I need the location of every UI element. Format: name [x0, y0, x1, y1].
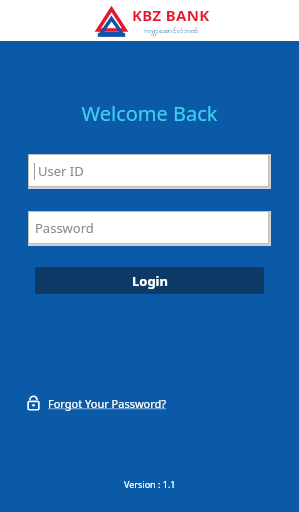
- button[interactable]: Forgot Your Password?: [26, 395, 299, 411]
- staticText: ကမ္ဘာ့အောင်လံဘဏ်: [144, 26, 199, 37]
- staticText: Login: [132, 272, 168, 290]
- staticText: User ID: [38, 162, 84, 180]
- staticText: Welcome Back: [81, 100, 218, 127]
- staticText: KBZ BANK: [132, 5, 210, 25]
- staticText: Version : 1.1: [124, 478, 176, 490]
- staticText: Forgot Your Password?: [48, 396, 167, 411]
- button[interactable]: Login: [35, 267, 264, 294]
- button[interactable]: User ID: [28, 154, 269, 187]
- button[interactable]: Password: [28, 211, 269, 244]
- staticText: Password: [35, 219, 94, 237]
